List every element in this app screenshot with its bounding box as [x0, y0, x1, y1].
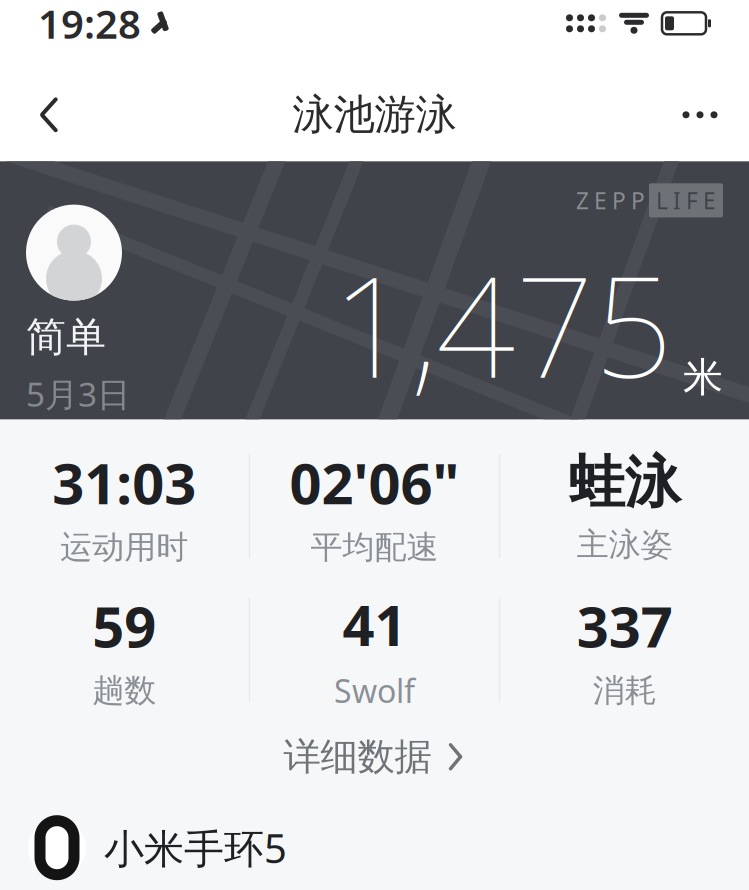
staticText: 平均配速 — [310, 528, 438, 567]
staticText: Z — [576, 185, 589, 215]
staticText: E — [594, 185, 607, 215]
staticText: 19:28 — [38, 0, 141, 50]
staticText: L — [656, 185, 668, 215]
staticText: 5月3日 — [26, 372, 130, 416]
button[interactable]: 更多 — [667, 82, 733, 148]
staticText: 1,475 — [332, 232, 673, 416]
staticText: I — [673, 185, 681, 215]
staticText: 运动用时 — [60, 528, 188, 567]
button[interactable]: 返回 — [16, 82, 82, 148]
staticText: Swolf — [334, 669, 415, 712]
button[interactable]: 详细数据 — [0, 712, 749, 802]
staticText: 31:03 — [52, 445, 196, 520]
staticText: P — [631, 185, 645, 215]
staticText: 简单 — [26, 313, 106, 362]
staticText: 米 — [683, 353, 723, 402]
staticText: 主泳姿 — [577, 525, 673, 564]
staticText: 详细数据 — [283, 734, 431, 780]
staticText: 59 — [92, 589, 156, 663]
staticText: P — [612, 185, 626, 215]
button[interactable]: 小米手环5 — [0, 802, 749, 890]
staticText: 小米手环5 — [104, 821, 287, 874]
staticText: 泳池游泳 — [292, 89, 456, 140]
staticText: E — [703, 185, 716, 215]
staticText: 蛙泳 — [569, 448, 681, 517]
staticText: 消耗 — [593, 671, 657, 710]
staticText: 337 — [577, 589, 673, 663]
staticText: 41 — [342, 587, 406, 661]
staticText: 02'06" — [289, 445, 459, 520]
staticText: F — [686, 185, 698, 215]
staticText: 趟数 — [92, 671, 156, 710]
